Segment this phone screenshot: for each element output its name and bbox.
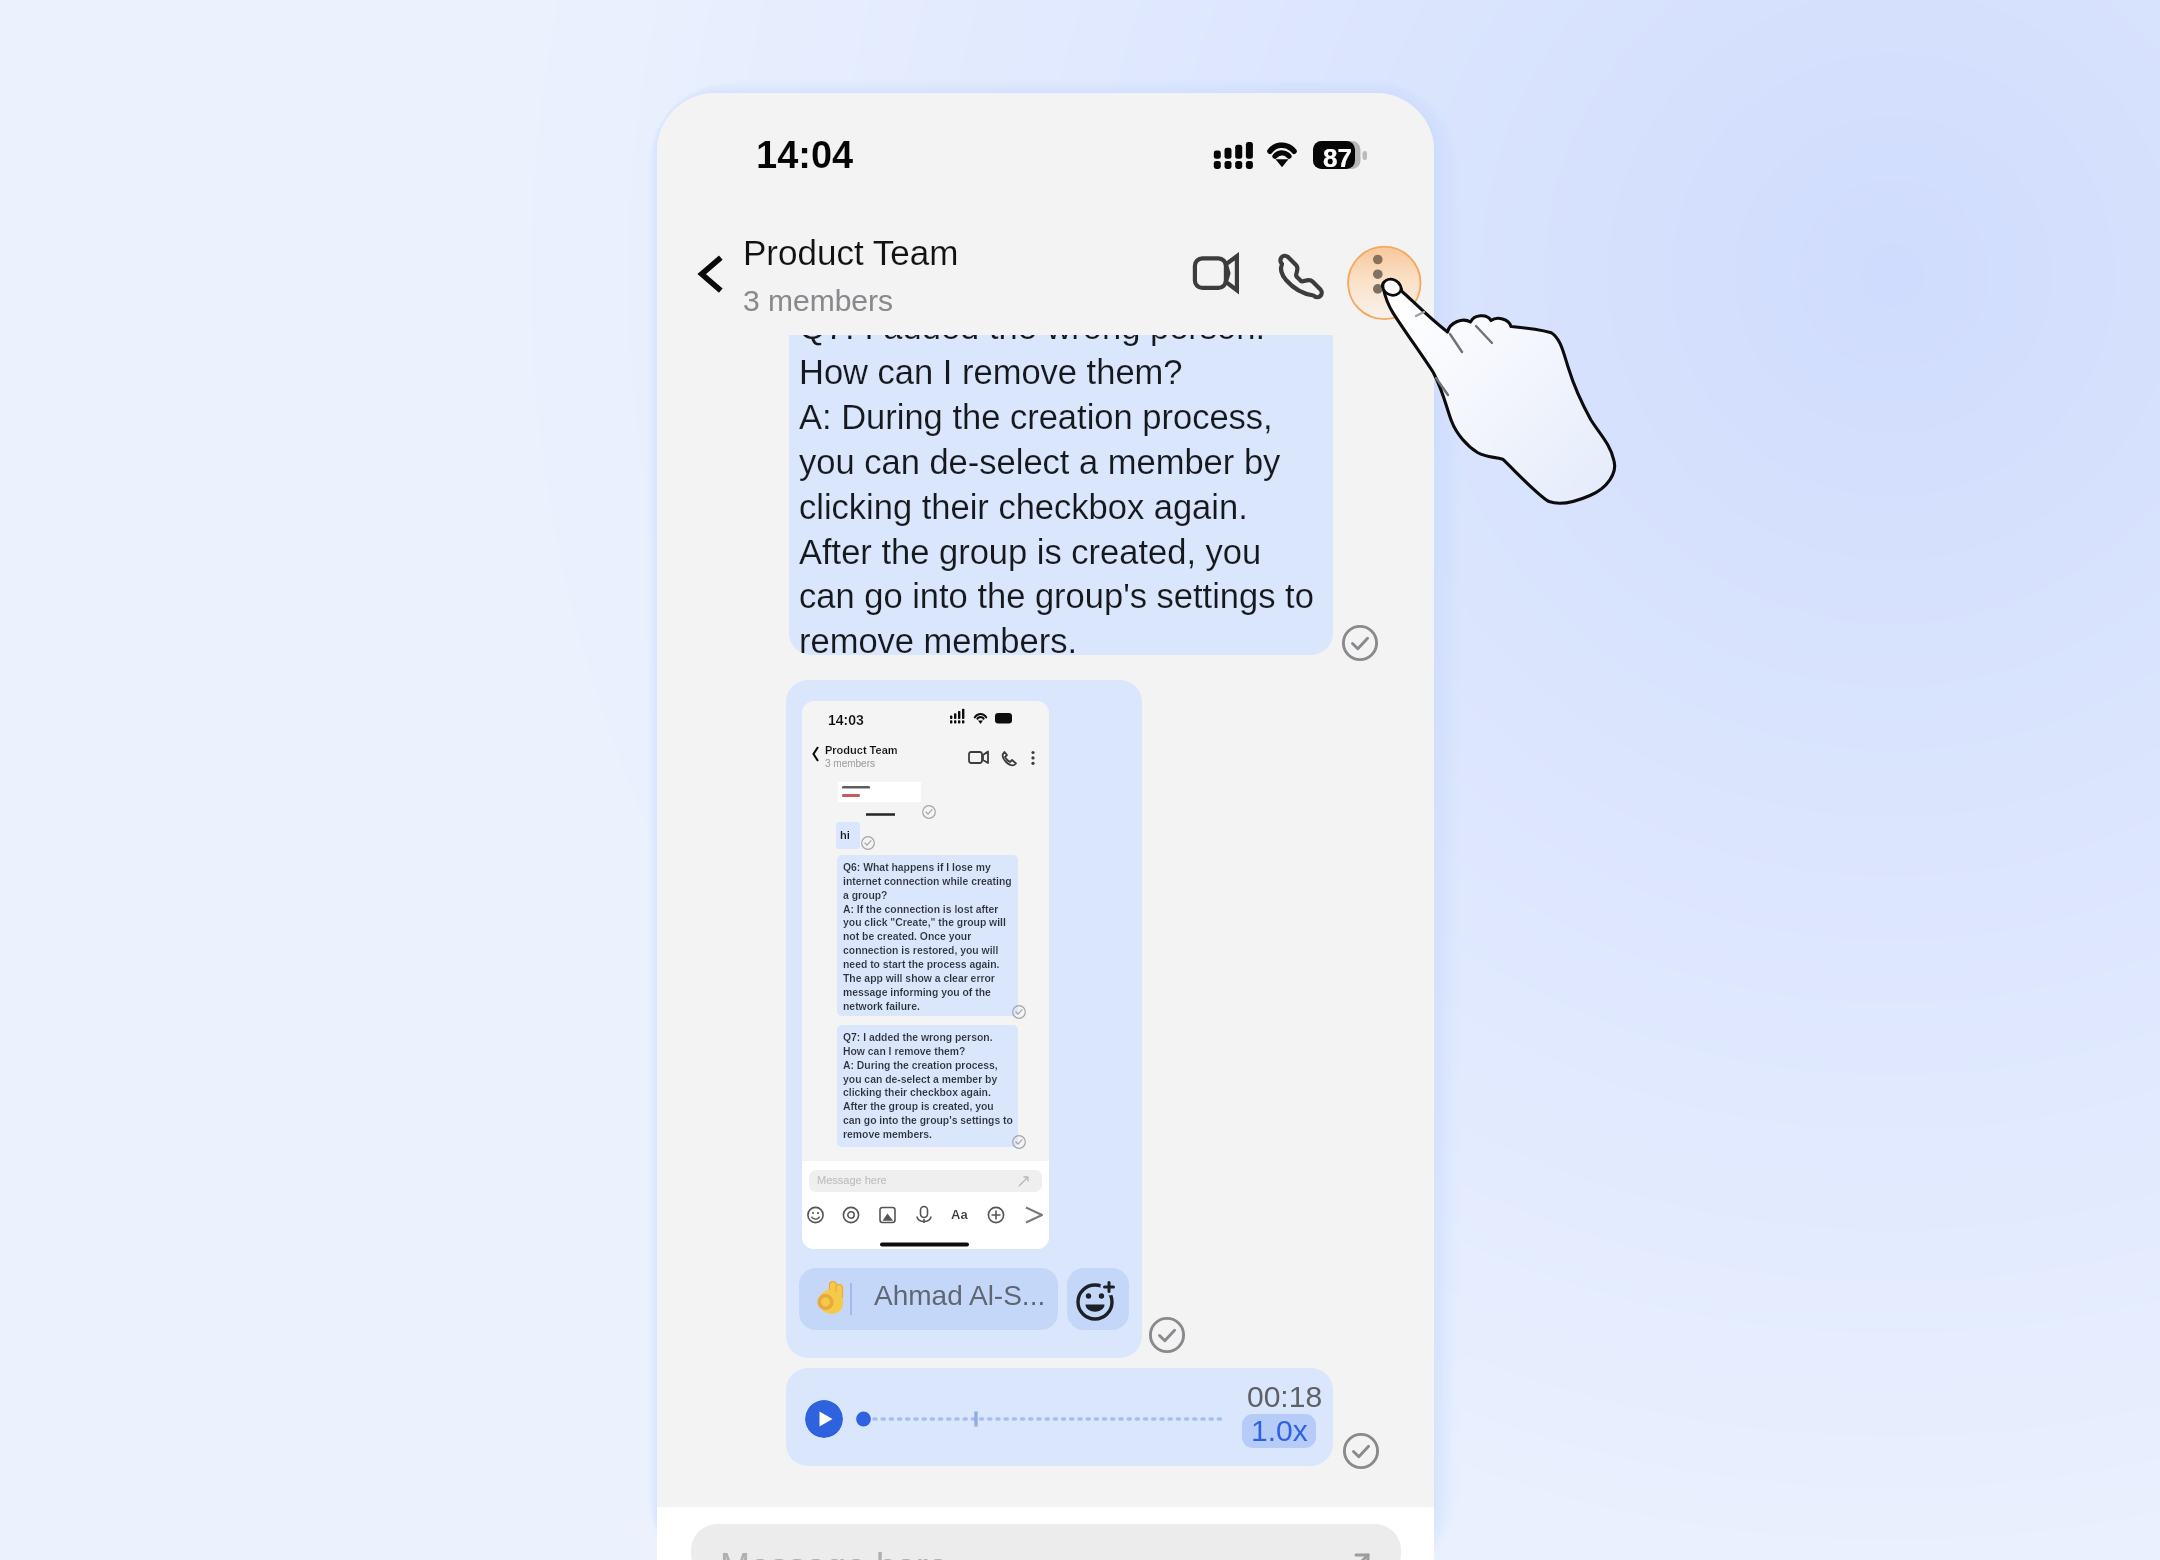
staticText: you can de-select a member by [843, 1074, 998, 1086]
staticText: 00:18 [1247, 1380, 1323, 1414]
staticText: How can I remove them? [799, 353, 1183, 392]
staticText: can go into the group's settings to [843, 1115, 1013, 1127]
button[interactable]: Ahmad Al-S... [799, 1268, 1058, 1330]
button[interactable]: 1.0x [1242, 1414, 1316, 1448]
staticText: 14:03 [828, 712, 864, 728]
staticText: 87 [1323, 143, 1352, 172]
staticText: network failure. [843, 1001, 920, 1013]
staticText: you click "Create," the group will [843, 917, 1006, 929]
staticText: 3 members [825, 758, 876, 769]
button[interactable]: Voice call [1269, 245, 1327, 303]
staticText: message informing you of the [843, 987, 991, 999]
staticText: remove members. [799, 622, 1077, 655]
staticText: clicking their checkbox again. [799, 488, 1248, 527]
staticText: clicking their checkbox again. [843, 1087, 991, 1099]
staticText: can go into the group's settings to [799, 577, 1314, 616]
staticText: Ahmad Al-S... [874, 1280, 1046, 1311]
button[interactable]: Video call [1184, 248, 1248, 312]
staticText: Q7: I added the wrong person. [843, 1032, 993, 1044]
staticText: you can de-select a member by [799, 443, 1281, 482]
staticText: not be created. Once your [843, 931, 972, 943]
button[interactable]: Add reaction [1067, 1268, 1129, 1330]
button[interactable]: 14:03 [786, 680, 1142, 1358]
staticText: Product Team [743, 233, 959, 272]
staticText: A: If the connection is lost after [843, 904, 999, 916]
staticText: 14:04 [756, 134, 854, 176]
button[interactable]: Q7: I added the wrong person. [789, 335, 1333, 655]
staticText: remove members. [843, 1129, 932, 1141]
button[interactable]: Back [681, 238, 743, 300]
staticText: Aa [951, 1207, 968, 1222]
staticText: Message here [720, 1546, 949, 1560]
staticText: How can I remove them? [843, 1046, 966, 1058]
staticText: Message here [817, 1174, 887, 1186]
staticText: Product Team [825, 744, 898, 756]
staticText: A: During the creation process, [843, 1060, 998, 1072]
button[interactable]: More options [1347, 246, 1422, 321]
staticText: After the group is created, you [843, 1101, 994, 1113]
staticText: The app will show a clear error [843, 973, 995, 985]
button[interactable]: Play voice message [786, 1368, 1333, 1466]
staticText: a group? [843, 890, 888, 902]
staticText: need to start the process again. [843, 959, 1000, 971]
staticText: Q6: What happens if I lose my [843, 862, 991, 874]
staticText: 1.0x [1251, 1414, 1308, 1448]
button[interactable]: Message here [691, 1524, 1401, 1560]
staticText: hi [840, 829, 850, 841]
staticText: After the group is created, you [799, 533, 1262, 572]
staticText: A: During the creation process, [799, 398, 1273, 437]
staticText: internet connection while creating [843, 876, 1012, 888]
staticText: Q7: I added the wrong person. [799, 335, 1266, 347]
staticText: connection is restored, you will [843, 945, 999, 957]
button[interactable]: Play voice message [805, 1400, 843, 1438]
staticText: 3 members [743, 284, 894, 318]
